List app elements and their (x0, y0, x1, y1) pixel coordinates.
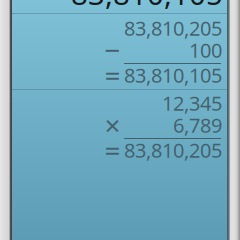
staticText: = (104, 131, 120, 169)
staticText: 12,345 (162, 90, 222, 116)
staticText: = (104, 56, 120, 94)
button[interactable] (0, 90, 240, 164)
staticText: 100 (189, 37, 222, 63)
staticText: 83,810,105 (71, 0, 223, 13)
button[interactable] (0, 14, 240, 89)
staticText: × (104, 106, 120, 144)
staticText: 83,810,205 (124, 137, 222, 163)
staticText: 83,810,105 (124, 62, 222, 88)
staticText: − (104, 31, 120, 69)
staticText: 6,789 (173, 112, 222, 138)
staticText: 83,810,205 (124, 15, 222, 41)
